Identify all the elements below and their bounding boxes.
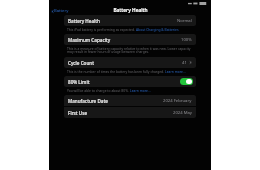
button[interactable]: Cycle Count bbox=[64, 57, 196, 68]
button[interactable]: Battery Health bbox=[64, 15, 196, 26]
button[interactable]: Back to Battery bbox=[51, 8, 69, 14]
staticText: Battery bbox=[54, 8, 69, 14]
button[interactable]: About Charging & Batteries bbox=[136, 27, 179, 31]
staticText: 2024 February bbox=[163, 98, 192, 104]
button[interactable]: 80% Limit bbox=[64, 76, 196, 87]
button[interactable]: Learn more... bbox=[130, 88, 151, 92]
staticText: 80% Limit bbox=[68, 79, 90, 85]
other: 80% Limit, on bbox=[180, 78, 193, 85]
staticText: You will be able to charge to about 80%. bbox=[67, 88, 130, 92]
staticText: First Use bbox=[68, 110, 88, 116]
staticText: This iPad battery is performing as expec… bbox=[67, 27, 136, 31]
staticText: Cycle Count bbox=[68, 60, 94, 66]
staticText: Normal bbox=[177, 18, 192, 24]
button[interactable]: Manufacture Date bbox=[64, 95, 196, 106]
staticText: This is the number of times the battery … bbox=[67, 69, 165, 73]
staticText: 2024 May bbox=[173, 110, 192, 116]
staticText: 41 bbox=[182, 60, 187, 66]
staticText: Battery Health bbox=[113, 7, 148, 14]
button[interactable]: First Use bbox=[64, 107, 196, 118]
button[interactable]: Learn more... bbox=[165, 69, 186, 73]
staticText: Battery Health bbox=[68, 18, 100, 24]
staticText: 100% bbox=[181, 37, 192, 43]
staticText: Maximum Capacity bbox=[68, 37, 111, 43]
staticText: Manufacture Date bbox=[68, 98, 108, 104]
staticText: This is a measure of battery capacity re… bbox=[67, 46, 193, 54]
button[interactable]: Maximum Capacity bbox=[64, 34, 196, 45]
